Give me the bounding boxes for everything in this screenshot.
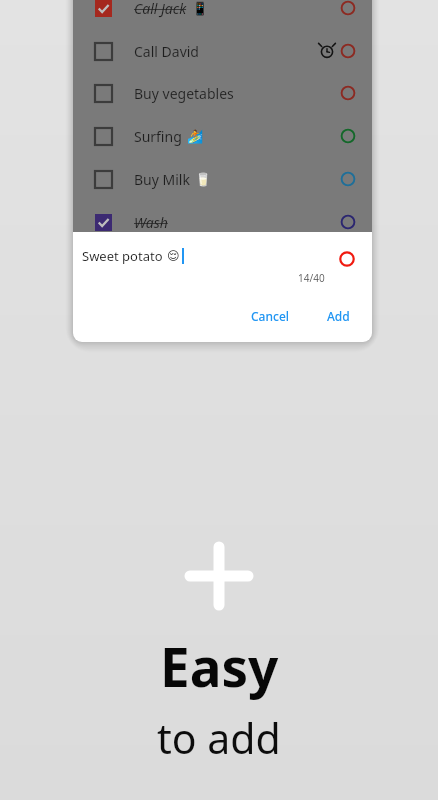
- staticText: Add: [327, 308, 350, 324]
- button[interactable]: Priority: [340, 128, 356, 144]
- staticText: Buy Milk: [134, 170, 190, 189]
- button[interactable]: Priority: [340, 171, 356, 187]
- staticText: Sweet potato: [82, 247, 163, 265]
- staticText: Call David: [134, 42, 199, 61]
- button[interactable]: Toggle Call David: [73, 34, 372, 68]
- button[interactable]: Priority: [340, 43, 356, 59]
- button[interactable]: Toggle Call David: [95, 43, 112, 60]
- button[interactable]: Priority: [340, 85, 356, 101]
- button[interactable]: Select priority colour: [339, 251, 355, 267]
- button[interactable]: Toggle Surfing: [95, 128, 112, 145]
- button[interactable]: Priority: [340, 0, 356, 16]
- staticText: 📱: [192, 1, 209, 16]
- button[interactable]: Toggle Call Jack: [73, 0, 372, 25]
- staticText: Cancel: [251, 308, 290, 324]
- staticText: to add: [157, 710, 281, 766]
- staticText: 😌: [167, 249, 180, 263]
- staticText: Wash: [134, 213, 168, 232]
- button[interactable]: Toggle Surfing: [73, 119, 372, 153]
- button[interactable]: Toggle Wash: [95, 214, 112, 231]
- button[interactable]: Toggle Wash: [73, 205, 372, 239]
- button[interactable]: Priority: [340, 214, 356, 230]
- button[interactable]: Toggle Buy vegetables: [73, 76, 372, 110]
- button[interactable]: Add: [319, 303, 358, 329]
- button[interactable]: Toggle Call Jack: [95, 0, 112, 17]
- staticText: Call Jack: [134, 0, 187, 18]
- other: Reminder: [319, 43, 335, 59]
- staticText: 🥛: [195, 172, 212, 187]
- button[interactable]: Add: [182, 539, 256, 613]
- button[interactable]: Toggle Buy vegetables: [95, 85, 112, 102]
- staticText: Buy vegetables: [134, 84, 234, 103]
- staticText: Surfing: [134, 127, 182, 146]
- staticText: Easy: [160, 630, 279, 702]
- button[interactable]: Cancel: [243, 303, 298, 329]
- staticText: 14/40: [298, 271, 325, 285]
- staticText: 🏄: [187, 129, 204, 144]
- button[interactable]: Toggle Buy Milk: [95, 171, 112, 188]
- button[interactable]: Toggle Buy Milk: [73, 162, 372, 196]
